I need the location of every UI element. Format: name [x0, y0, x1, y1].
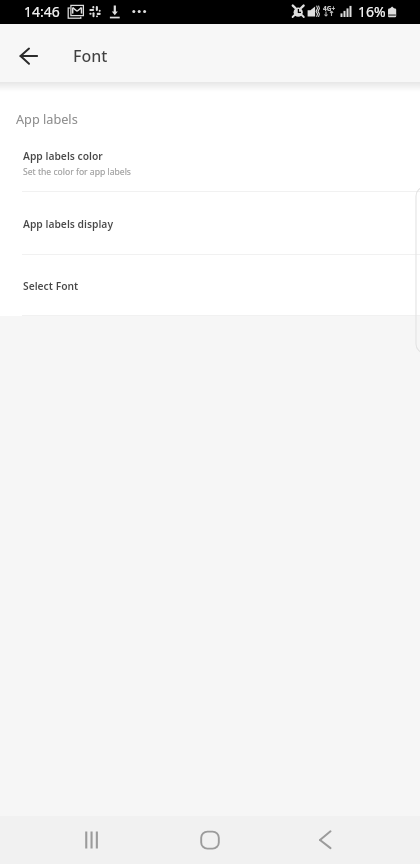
button[interactable]: Recent apps [62, 816, 122, 864]
staticText: App labels display [23, 217, 114, 231]
staticText: Font [73, 45, 108, 67]
staticText: Set the color for app labels [23, 166, 131, 178]
button[interactable]: Select Font [0, 255, 420, 315]
staticText: App labels [16, 110, 78, 127]
staticText: 14:46 [24, 2, 60, 21]
button[interactable]: Navigate up [11, 38, 47, 74]
button[interactable]: App labels color [0, 129, 420, 191]
staticText: 16% [358, 2, 386, 21]
staticText: 4G+ [323, 4, 336, 13]
button[interactable]: Home [180, 816, 240, 864]
staticText: App labels color [23, 149, 103, 163]
button[interactable]: App labels display [0, 192, 420, 254]
staticText: Select Font [23, 279, 79, 293]
button[interactable]: Back [296, 816, 356, 864]
